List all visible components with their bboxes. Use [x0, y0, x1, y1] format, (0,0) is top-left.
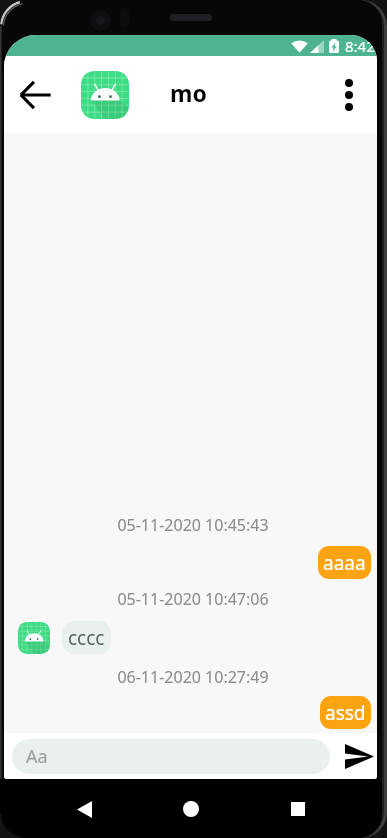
staticText: Aa	[26, 744, 48, 769]
button[interactable]: More options	[321, 56, 377, 134]
staticText: mo	[170, 77, 207, 108]
button[interactable]: Back	[61, 786, 107, 832]
button[interactable]: Back	[4, 56, 66, 134]
button[interactable]: cccc	[62, 621, 111, 654]
staticText: 05-11-2020 10:45:43	[117, 514, 269, 536]
button[interactable]: aaaa	[318, 546, 371, 579]
staticText: 05-11-2020 10:47:06	[117, 588, 269, 610]
staticText: 8:42	[345, 36, 375, 56]
button[interactable]: assd	[320, 696, 371, 729]
button[interactable]: Home	[168, 786, 214, 832]
staticText: assd	[325, 700, 366, 726]
staticText: 06-11-2020 10:27:49	[117, 666, 269, 688]
button[interactable]: Recents	[275, 786, 321, 832]
button[interactable]: Aa	[12, 739, 330, 774]
staticText: aaaa	[323, 550, 366, 576]
staticText: cccc	[68, 625, 105, 651]
button[interactable]: Send	[330, 733, 377, 779]
